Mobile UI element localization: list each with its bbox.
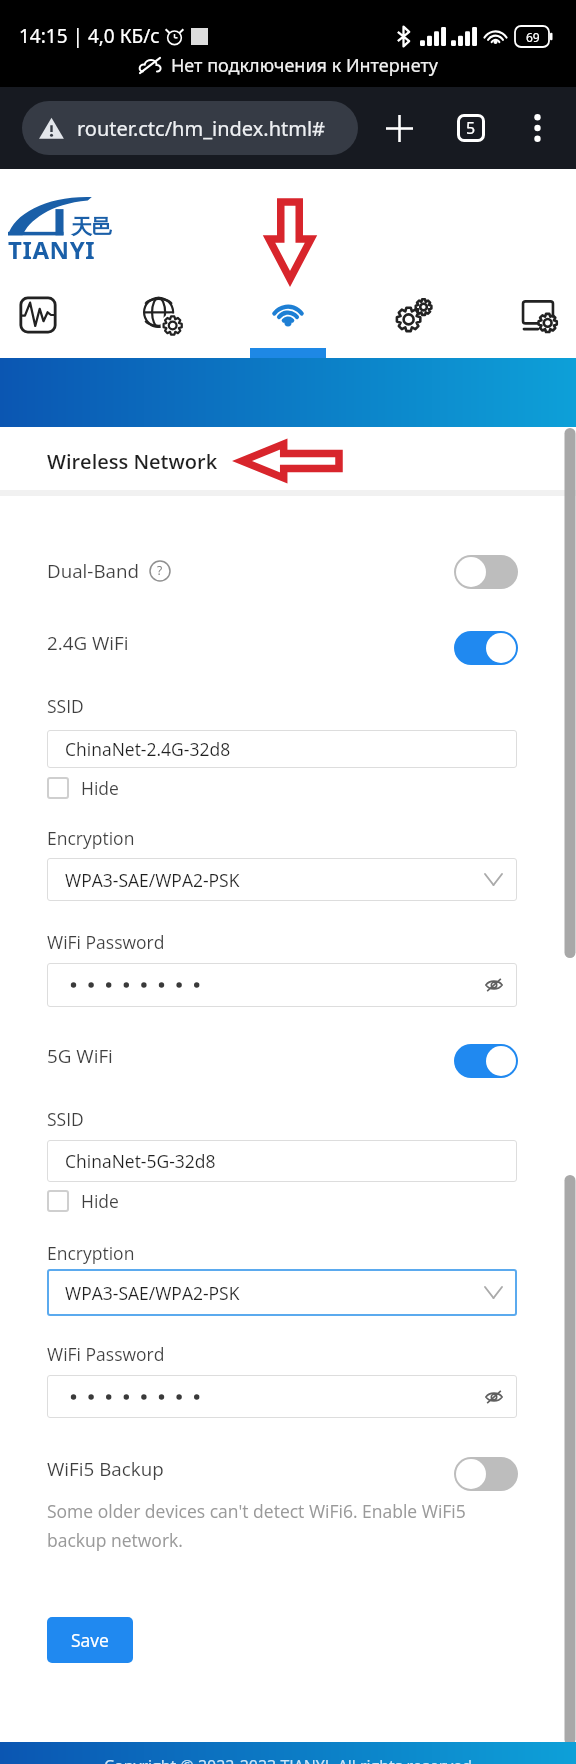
staticText: Some older devices can't detect WiFi6. E… bbox=[47, 1499, 466, 1552]
button[interactable]: WPA3-SAE/WPA2-PSK bbox=[47, 1269, 517, 1316]
button[interactable]: On bbox=[454, 631, 518, 665]
staticText: ? bbox=[157, 562, 163, 578]
staticText: 69 bbox=[526, 29, 540, 45]
button[interactable]: On bbox=[454, 1044, 518, 1078]
staticText: router.ctc/hm_index.html# bbox=[77, 115, 326, 142]
button[interactable]: Network bbox=[133, 291, 193, 339]
staticText: SSID bbox=[47, 1107, 84, 1131]
button[interactable]: WiFi5 Backup bbox=[47, 1455, 164, 1483]
button[interactable]: Open tabs, 5 bbox=[448, 105, 494, 151]
staticText: Save bbox=[71, 1628, 109, 1652]
staticText: 5 bbox=[466, 117, 476, 139]
button[interactable]: Wireless bbox=[258, 291, 318, 339]
staticText: Wireless Network bbox=[47, 448, 218, 475]
staticText: TIANYI bbox=[8, 233, 96, 266]
button[interactable]: 2.4G WiFi bbox=[47, 629, 129, 657]
staticText: Нет подключения к Интернету bbox=[171, 53, 438, 78]
staticText: ChinaNet-5G-32d8 bbox=[65, 1149, 216, 1173]
staticText: Copyright © 2022-2023 TIANYI. All rights… bbox=[104, 1755, 472, 1764]
button[interactable]: Device bbox=[508, 291, 568, 339]
button[interactable]: ChinaNet-2.4G-32d8 bbox=[47, 730, 517, 768]
button[interactable]: Off bbox=[454, 555, 518, 589]
button[interactable]: Hide bbox=[47, 1188, 119, 1214]
button[interactable]: Dual-Band bbox=[47, 557, 171, 585]
button[interactable]: Show password bbox=[47, 963, 517, 1007]
button[interactable]: Save bbox=[47, 1617, 133, 1663]
button[interactable]: More options bbox=[514, 105, 560, 151]
staticText: 5G WiFi bbox=[47, 1043, 113, 1069]
staticText: Hide bbox=[81, 1189, 119, 1213]
staticText: WiFi Password bbox=[47, 1342, 165, 1366]
staticText: WPA3-SAE/WPA2-PSK bbox=[65, 868, 240, 892]
staticText: Hide bbox=[81, 776, 119, 800]
button[interactable]: Diagnostics bbox=[8, 291, 68, 339]
staticText: 2.4G WiFi bbox=[47, 630, 129, 656]
button[interactable]: ChinaNet-5G-32d8 bbox=[47, 1140, 517, 1182]
staticText: ChinaNet-2.4G-32d8 bbox=[65, 737, 231, 761]
button[interactable]: Hide bbox=[47, 775, 119, 801]
staticText: Dual-Band bbox=[47, 558, 140, 584]
staticText: 14:15 | 4,0 КБ/с bbox=[19, 23, 160, 49]
button[interactable]: Show password bbox=[47, 1375, 517, 1418]
button[interactable]: 5G WiFi bbox=[47, 1042, 113, 1070]
button[interactable]: Show password bbox=[479, 1382, 509, 1412]
staticText: Encryption bbox=[47, 826, 135, 850]
staticText: SSID bbox=[47, 694, 84, 718]
staticText: WiFi5 Backup bbox=[47, 1456, 164, 1482]
button[interactable]: router.ctc/hm_index.html# bbox=[22, 101, 358, 155]
staticText: 天邑 bbox=[71, 214, 113, 240]
button[interactable]: Show password bbox=[479, 970, 509, 1000]
button[interactable]: Off bbox=[454, 1457, 518, 1491]
button[interactable]: WPA3-SAE/WPA2-PSK bbox=[47, 858, 517, 901]
button[interactable]: Settings bbox=[383, 291, 443, 339]
staticText: Encryption bbox=[47, 1241, 135, 1265]
staticText: WPA3-SAE/WPA2-PSK bbox=[65, 1281, 240, 1305]
staticText: WiFi Password bbox=[47, 930, 165, 954]
button[interactable]: New tab bbox=[376, 105, 422, 151]
